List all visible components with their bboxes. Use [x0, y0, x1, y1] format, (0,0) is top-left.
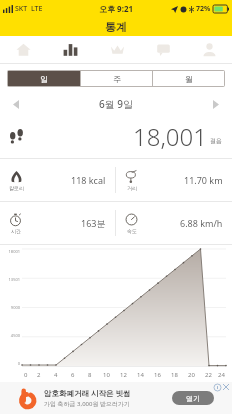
staticText: 118 kcal — [71, 174, 106, 186]
button[interactable]: 칼로리 — [0, 159, 115, 201]
staticText: 걸음 — [210, 137, 222, 145]
staticText: SKT — [15, 4, 28, 14]
staticText: 2 — [37, 371, 41, 379]
staticText: 6.88 km/h — [180, 217, 223, 229]
button[interactable]: Statistics — [47, 36, 94, 63]
staticText: 통계 — [105, 20, 127, 34]
staticText: 11.70 km — [184, 174, 223, 186]
button[interactable]: 주 — [81, 71, 152, 86]
button[interactable]: 속도 — [116, 202, 232, 244]
staticText: 주 — [113, 74, 121, 84]
button[interactable]: 거리 — [116, 159, 232, 201]
staticText: 4500 — [10, 333, 20, 338]
staticText: 거리 — [127, 185, 137, 191]
staticText: 163분 — [81, 217, 106, 229]
button[interactable]: 일 — [8, 71, 80, 86]
staticText: 13501 — [8, 277, 20, 282]
staticText: LTE — [31, 4, 43, 14]
staticText: 20 — [188, 371, 195, 379]
button[interactable]: Next day — [208, 96, 224, 112]
staticText: 6 — [71, 371, 75, 379]
staticText: 4 — [54, 371, 58, 379]
staticText: 22 — [205, 371, 212, 379]
button[interactable]: Close ad — [222, 383, 230, 391]
button[interactable]: 월 — [153, 71, 224, 86]
staticText: 오후 9:21 — [99, 3, 134, 14]
staticText: 8 — [88, 371, 92, 379]
staticText: 14 — [137, 371, 144, 379]
button[interactable]: 열기 — [172, 391, 214, 405]
staticText: 9000 — [10, 305, 20, 310]
staticText: 0 — [24, 371, 28, 379]
staticText: 칼로리 — [9, 185, 24, 191]
button[interactable]: Ranking — [94, 36, 140, 63]
staticText: 10 — [103, 371, 110, 379]
staticText: 월 — [185, 74, 193, 84]
staticText: 72% — [196, 4, 211, 14]
staticText: 12 — [120, 371, 127, 379]
staticText: 열기 — [186, 394, 200, 403]
staticText: 6월 9일 — [99, 97, 134, 111]
staticText: 18,001 — [133, 120, 207, 153]
button[interactable]: Previous day — [8, 96, 24, 112]
staticText: 0 — [17, 361, 20, 366]
staticText: 18 — [171, 371, 178, 379]
button[interactable]: Chat — [140, 36, 186, 63]
staticText: 16 — [154, 371, 161, 379]
button[interactable]: Ad info — [213, 383, 221, 391]
button[interactable]: 시간 — [0, 202, 115, 244]
button[interactable]: 암호화폐거래 시작은 빗썸 — [0, 382, 232, 414]
staticText: 18001 — [8, 249, 20, 254]
staticText: 속도 — [127, 228, 137, 234]
staticText: 가입 축하금 3,000원 받으러가기 — [44, 400, 131, 408]
button[interactable]: Profile — [186, 36, 232, 63]
staticText: 24 — [218, 371, 225, 379]
staticText: 암호화폐거래 시작은 빗썸 — [44, 388, 131, 398]
staticText: 일 — [40, 74, 48, 84]
button[interactable]: Home — [0, 36, 47, 63]
staticText: 시간 — [11, 228, 21, 234]
